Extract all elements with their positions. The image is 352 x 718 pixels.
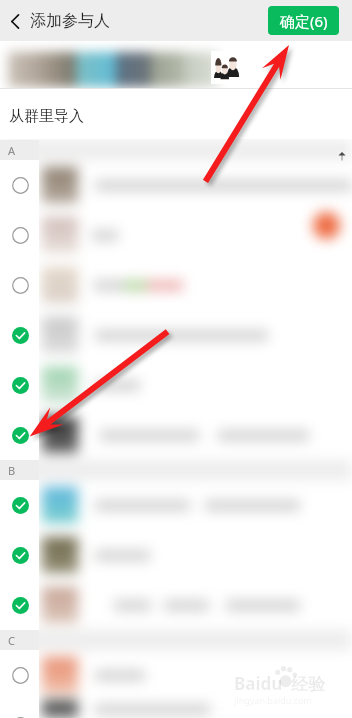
- staticText: C: [8, 633, 15, 648]
- button[interactable]: [0, 700, 39, 718]
- button[interactable]: [0, 480, 39, 530]
- button[interactable]: Select group chat: [211, 51, 244, 84]
- button[interactable]: [0, 650, 39, 700]
- button[interactable]: Scroll to top: [334, 148, 350, 164]
- button[interactable]: Back: [0, 6, 30, 36]
- button[interactable]: [0, 580, 352, 630]
- button[interactable]: [0, 530, 39, 580]
- button[interactable]: [0, 160, 39, 210]
- staticText: Baidu 经验: [234, 672, 326, 695]
- button[interactable]: [0, 160, 352, 210]
- staticText: 从群里导入: [9, 107, 84, 126]
- button[interactable]: [0, 530, 352, 580]
- button[interactable]: [0, 650, 352, 700]
- button[interactable]: [0, 360, 39, 410]
- button[interactable]: [0, 260, 352, 310]
- button[interactable]: [0, 410, 39, 460]
- staticText: jingyan.baidu.com: [234, 694, 312, 706]
- button[interactable]: [0, 210, 39, 260]
- staticText: B: [8, 463, 16, 478]
- staticText: 确定(6): [280, 11, 328, 31]
- button[interactable]: [0, 310, 39, 360]
- button[interactable]: [0, 260, 39, 310]
- button[interactable]: [0, 580, 39, 630]
- button[interactable]: 确定(6): [268, 6, 339, 35]
- button[interactable]: 从群里导入: [0, 89, 352, 139]
- staticText: 添加参与人: [30, 11, 110, 31]
- button[interactable]: [0, 480, 352, 530]
- staticText: A: [8, 143, 16, 158]
- button[interactable]: [0, 360, 352, 410]
- button[interactable]: [0, 210, 352, 260]
- button[interactable]: [0, 410, 352, 460]
- button[interactable]: [0, 310, 352, 360]
- button[interactable]: [0, 700, 352, 718]
